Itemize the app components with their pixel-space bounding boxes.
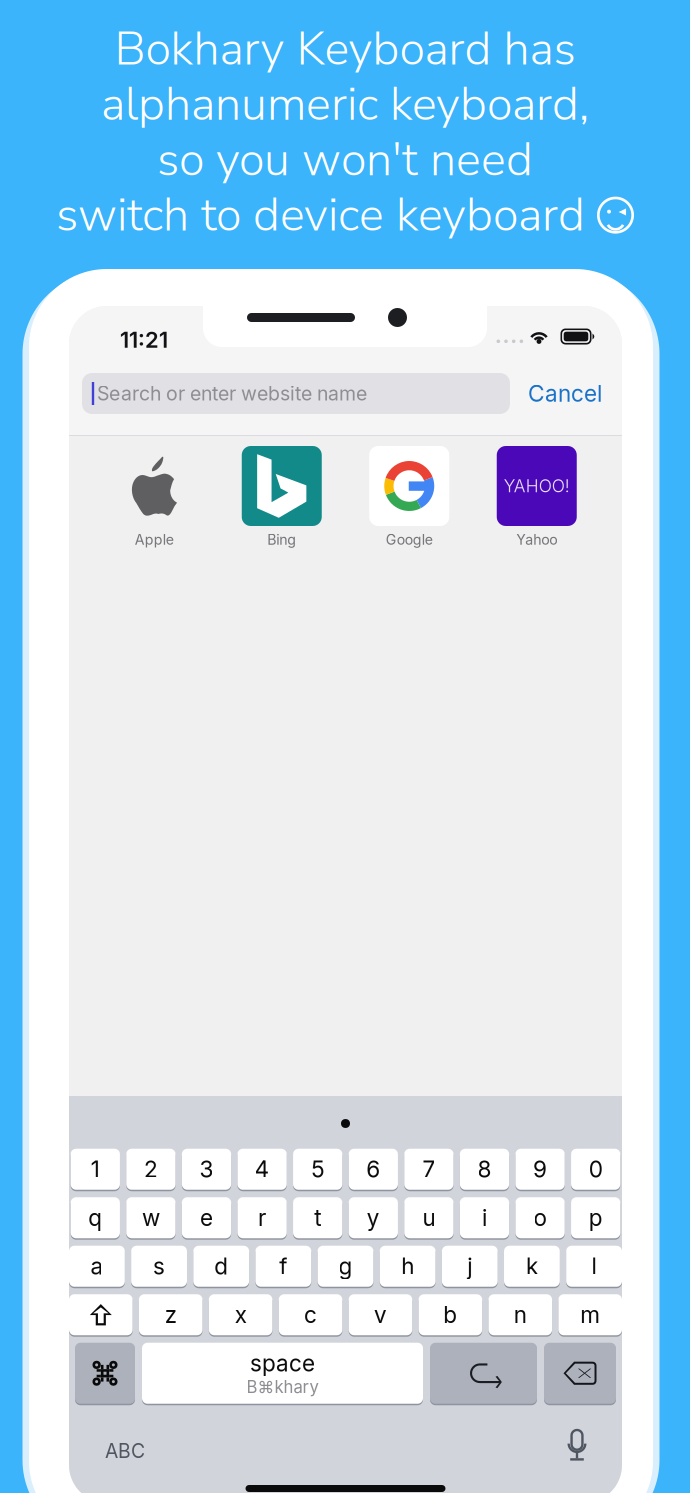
button[interactable]: n [488, 1293, 552, 1336]
button[interactable]: e [182, 1196, 231, 1239]
staticText: Bokhary Keyboard has [114, 17, 575, 81]
staticText: j [467, 1252, 472, 1280]
staticText: 7 [422, 1155, 435, 1183]
button[interactable]: YAHOO! [473, 446, 600, 548]
staticText: Yahoo [516, 531, 557, 548]
button[interactable] [430, 1342, 537, 1404]
button[interactable]: 3 [182, 1148, 231, 1190]
button[interactable]: space [142, 1342, 423, 1404]
staticText: 0 [589, 1155, 603, 1183]
staticText: o [534, 1204, 547, 1231]
button[interactable]: t [293, 1196, 342, 1239]
button[interactable] [75, 1342, 135, 1404]
button[interactable] [544, 1342, 616, 1404]
button[interactable] [69, 1293, 133, 1336]
button[interactable]: Google [345, 446, 473, 548]
button[interactable]: o [515, 1196, 565, 1239]
button[interactable]: l [566, 1245, 622, 1287]
button[interactable]: a [69, 1245, 125, 1287]
button[interactable]: f [255, 1245, 311, 1287]
button[interactable]: b [419, 1293, 482, 1336]
staticText: so you won't need [157, 128, 533, 192]
button[interactable]: 6 [349, 1148, 398, 1190]
button[interactable]: Search or enter website name [82, 373, 510, 414]
staticText: w [142, 1204, 160, 1231]
staticText: u [422, 1204, 435, 1231]
staticText: y [367, 1204, 380, 1231]
button[interactable]: z [139, 1293, 202, 1336]
button[interactable]: Dictate [560, 1430, 594, 1464]
staticText: Google [386, 531, 433, 548]
staticText: t [314, 1204, 321, 1231]
staticText: l [592, 1252, 597, 1280]
button[interactable]: p [571, 1196, 620, 1239]
staticText: space [250, 1349, 315, 1377]
staticText: Cancel [528, 380, 602, 407]
button[interactable]: g [318, 1245, 373, 1287]
staticText: e [200, 1204, 213, 1231]
staticText: c [304, 1301, 317, 1328]
staticText: g [338, 1252, 352, 1280]
button[interactable]: i [460, 1196, 509, 1239]
staticText: q [88, 1204, 102, 1231]
staticText: k [526, 1252, 538, 1280]
staticText: alphanumeric keyboard, [101, 73, 589, 136]
staticText: p [589, 1204, 603, 1231]
staticText: b [443, 1301, 457, 1328]
staticText: d [214, 1252, 228, 1280]
staticText: n [514, 1301, 527, 1328]
button[interactable]: 0 [571, 1148, 620, 1190]
button[interactable]: ABC [93, 1433, 157, 1469]
button[interactable]: x [209, 1293, 272, 1336]
staticText: Search or enter website name [97, 382, 367, 405]
staticText: m [580, 1301, 600, 1328]
staticText: 2 [144, 1155, 158, 1183]
button[interactable]: q [71, 1196, 120, 1239]
button[interactable]: j [442, 1245, 498, 1287]
button[interactable]: w [126, 1196, 175, 1239]
staticText: 8 [477, 1155, 491, 1183]
button[interactable]: k [504, 1245, 560, 1287]
staticText: Apple [135, 531, 174, 548]
staticText: 11:21 [120, 326, 168, 353]
button[interactable]: c [279, 1293, 342, 1336]
button[interactable]: 2 [126, 1148, 175, 1190]
button[interactable]: u [404, 1196, 453, 1239]
staticText: f [279, 1252, 287, 1280]
staticText: YAHOO! [504, 475, 570, 496]
staticText: switch to device keyboard [56, 183, 585, 247]
button[interactable]: h [380, 1245, 435, 1287]
button[interactable]: Cancel [518, 373, 612, 414]
staticText: h [401, 1252, 414, 1280]
button[interactable]: m [558, 1293, 622, 1336]
button[interactable]: 5 [293, 1148, 342, 1190]
staticText: z [165, 1301, 177, 1328]
button[interactable]: d [193, 1245, 249, 1287]
button[interactable]: 7 [404, 1148, 453, 1190]
button[interactable]: 1 [71, 1148, 120, 1190]
button[interactable]: y [349, 1196, 398, 1239]
staticText: v [374, 1301, 387, 1328]
button[interactable]: Apple [90, 446, 218, 548]
button[interactable]: 4 [237, 1148, 287, 1190]
staticText: r [258, 1204, 266, 1231]
button[interactable]: 9 [515, 1148, 565, 1190]
button[interactable]: 8 [460, 1148, 509, 1190]
staticText: a [90, 1252, 103, 1280]
button[interactable]: r [237, 1196, 287, 1239]
staticText: 9 [533, 1155, 547, 1183]
staticText: s [153, 1252, 165, 1280]
staticText: 5 [311, 1155, 324, 1183]
staticText: 1 [91, 1155, 100, 1183]
staticText: i [482, 1204, 487, 1231]
staticText: x [235, 1301, 247, 1328]
button[interactable]: Bing [218, 446, 345, 548]
staticText: B⌘khary [246, 1377, 318, 1397]
staticText: 3 [199, 1155, 213, 1183]
staticText: Bing [267, 531, 296, 548]
staticText: 4 [255, 1155, 270, 1183]
staticText: ABC [105, 1439, 145, 1463]
staticText: 6 [366, 1155, 380, 1183]
button[interactable]: v [349, 1293, 412, 1336]
button[interactable]: s [131, 1245, 187, 1287]
